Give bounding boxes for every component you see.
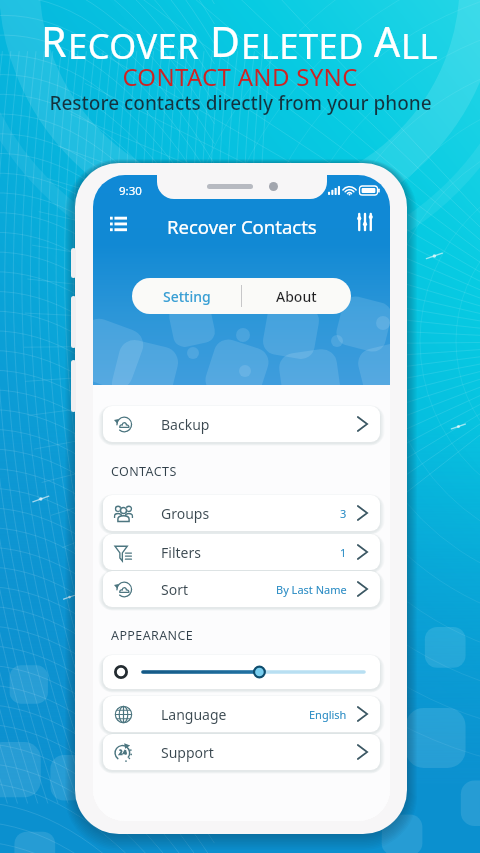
staticText: Recover Contacts bbox=[167, 214, 317, 239]
staticText: LL bbox=[401, 22, 439, 69]
button[interactable] bbox=[103, 655, 380, 689]
staticText: CONTACTS bbox=[111, 463, 177, 480]
button[interactable]: Menu bbox=[103, 207, 133, 237]
button[interactable]: Setting bbox=[132, 278, 241, 314]
staticText: 1 bbox=[340, 545, 347, 560]
staticText: Restore contacts directly from your phon… bbox=[49, 90, 432, 116]
staticText: APPEARANCE bbox=[111, 627, 194, 644]
button[interactable]: Sort bbox=[103, 571, 380, 607]
staticText: About bbox=[276, 287, 317, 306]
staticText: ELETED bbox=[241, 22, 364, 69]
button[interactable]: Backup bbox=[103, 406, 380, 442]
button[interactable]: About bbox=[242, 278, 351, 314]
button[interactable]: Filters bbox=[103, 534, 380, 570]
staticText: Groups bbox=[161, 504, 210, 523]
button[interactable]: Settings bbox=[350, 207, 380, 237]
staticText: Setting bbox=[163, 287, 211, 306]
staticText: ECOVER bbox=[68, 22, 200, 69]
button[interactable]: Support bbox=[103, 734, 380, 770]
staticText: 3 bbox=[340, 506, 347, 521]
staticText: Language bbox=[161, 705, 227, 724]
button[interactable]: Language bbox=[103, 696, 380, 732]
staticText: D bbox=[210, 13, 241, 69]
staticText: By Last Name bbox=[276, 582, 347, 597]
staticText: English bbox=[309, 707, 347, 722]
staticText: Filters bbox=[161, 543, 201, 562]
staticText: CONTACT AND SYNC bbox=[122, 60, 358, 93]
staticText: Support bbox=[161, 743, 214, 762]
staticText: Sort bbox=[161, 580, 188, 599]
staticText: R bbox=[41, 13, 68, 69]
staticText: 9:30 bbox=[119, 183, 142, 199]
staticText: Backup bbox=[161, 415, 210, 434]
staticText: A bbox=[374, 13, 401, 69]
button[interactable]: Groups bbox=[103, 495, 380, 531]
